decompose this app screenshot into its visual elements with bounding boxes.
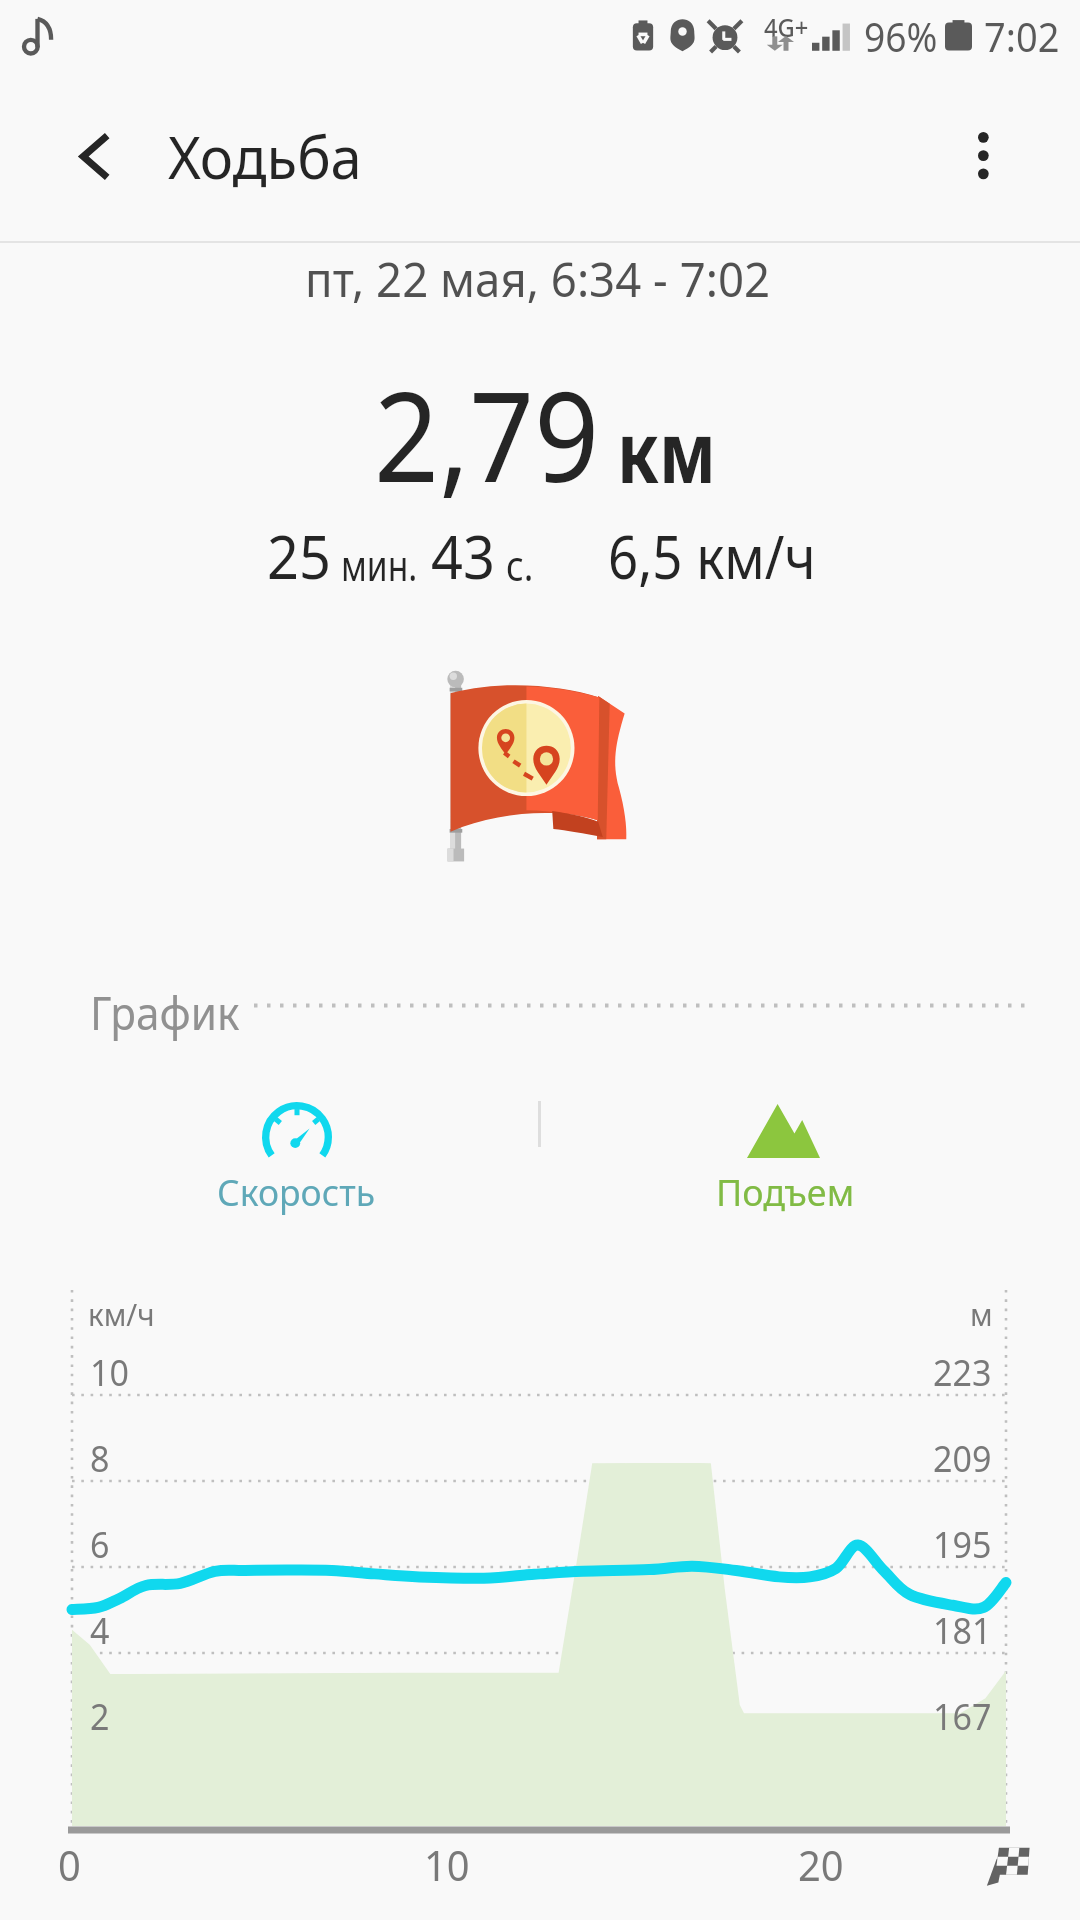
staticText: Подъем (716, 1166, 855, 1216)
staticText: 7:02 (984, 9, 1060, 63)
staticText: 10 (90, 1346, 130, 1396)
staticText: мин. (341, 537, 418, 593)
staticText: 6 (90, 1518, 110, 1568)
staticText: 20 (798, 1836, 844, 1893)
staticText: м (970, 1293, 993, 1335)
staticText: 209 (933, 1432, 992, 1482)
staticText: Скорость (217, 1166, 375, 1216)
staticText: 25 (267, 515, 331, 597)
staticText: 181 (933, 1604, 992, 1654)
staticText: км (617, 392, 716, 508)
staticText: 0 (58, 1836, 82, 1893)
staticText: 2,79 (374, 349, 600, 518)
staticText: 96% (864, 9, 937, 63)
staticText: 195 (933, 1518, 992, 1568)
staticText: 223 (933, 1346, 992, 1396)
staticText: с. (506, 537, 534, 593)
staticText: пт, 22 мая, 6:34 - 7:02 (305, 247, 771, 311)
staticText: 4G+ (764, 10, 809, 44)
button[interactable]: More options (940, 78, 1080, 241)
staticText: 43 (431, 515, 495, 597)
staticText: 4 (90, 1604, 110, 1654)
staticText: 167 (933, 1690, 992, 1740)
staticText: км/ч (88, 1293, 155, 1335)
staticText: 2 (90, 1690, 110, 1740)
staticText: 8 (90, 1432, 110, 1482)
button[interactable]: Finish (986, 1843, 1030, 1887)
button[interactable] (640, 1090, 930, 1220)
button[interactable]: Back (0, 78, 160, 241)
staticText: 6,5 км/ч (608, 515, 816, 597)
staticText: График (90, 982, 239, 1043)
staticText: 10 (424, 1836, 470, 1893)
staticText: Ходьба (168, 116, 362, 196)
button[interactable] (150, 1090, 440, 1220)
